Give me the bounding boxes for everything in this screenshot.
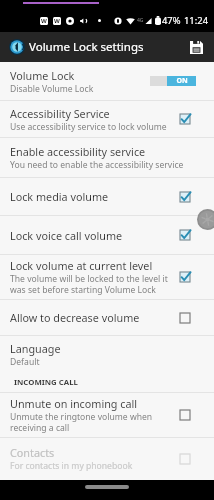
staticText: Volume Lock settings	[29, 39, 144, 55]
button[interactable]: Unchecked	[173, 449, 196, 469]
button[interactable]: Floating assistant	[197, 209, 214, 230]
staticText: Default	[10, 356, 40, 368]
button[interactable]: Accessibility Service	[0, 101, 214, 137]
button[interactable]: Contacts	[0, 438, 214, 479]
staticText: Lock voice call volume	[10, 228, 123, 243]
staticText: W	[41, 17, 47, 25]
button[interactable]: Allow to decrease volume	[0, 300, 214, 335]
staticText: Use accessibility service to lock volume	[10, 121, 167, 133]
staticText: Disable Volume Lock	[10, 83, 94, 95]
staticText: Enable accessibility service	[10, 144, 146, 159]
staticText: Unmute the ringtone volume when receivin…	[10, 411, 173, 434]
staticText: Lock media volume	[10, 189, 109, 204]
button[interactable]: Checked	[173, 187, 196, 207]
button[interactable]: Unchecked	[173, 405, 196, 425]
staticText: ON	[176, 76, 188, 86]
staticText: For contacts in my phonebook	[10, 460, 133, 472]
button[interactable]: Unchecked	[173, 308, 196, 328]
staticText: Lock volume at current level	[10, 258, 153, 273]
staticText: You need to enable the accessibility ser…	[10, 159, 184, 171]
staticText: W	[54, 17, 60, 25]
button[interactable]: Checked	[173, 225, 196, 245]
button[interactable]: Lock voice call volume	[0, 216, 214, 254]
staticText: 11:24	[184, 14, 209, 27]
staticText: Contacts	[10, 445, 55, 460]
staticText: The volume will be locked to the level i…	[10, 273, 173, 296]
staticText: Language	[10, 341, 61, 356]
staticText: Allow to decrease volume	[10, 310, 140, 325]
button[interactable]: Enable accessibility service	[0, 138, 214, 177]
staticText: Accessibility Service	[10, 106, 110, 121]
staticText: Unmute on incoming call	[10, 396, 138, 411]
button[interactable]: Checked	[173, 109, 196, 129]
button[interactable]: Volume Lock on	[150, 76, 196, 86]
button[interactable]: Language	[0, 336, 214, 372]
button[interactable]: Lock volume at current level	[0, 255, 214, 299]
staticText: Volume Lock	[10, 68, 75, 83]
staticText: 47%	[162, 14, 181, 27]
staticText: 4G	[137, 17, 144, 24]
button[interactable]: Checked	[173, 267, 196, 287]
button[interactable]: Volume Lock	[0, 62, 214, 100]
staticText: INCOMING CALL	[14, 377, 78, 388]
button[interactable]: Lock media volume	[0, 178, 214, 215]
button[interactable]: Save	[181, 32, 211, 62]
button[interactable]: Unmute on incoming call	[0, 393, 214, 437]
